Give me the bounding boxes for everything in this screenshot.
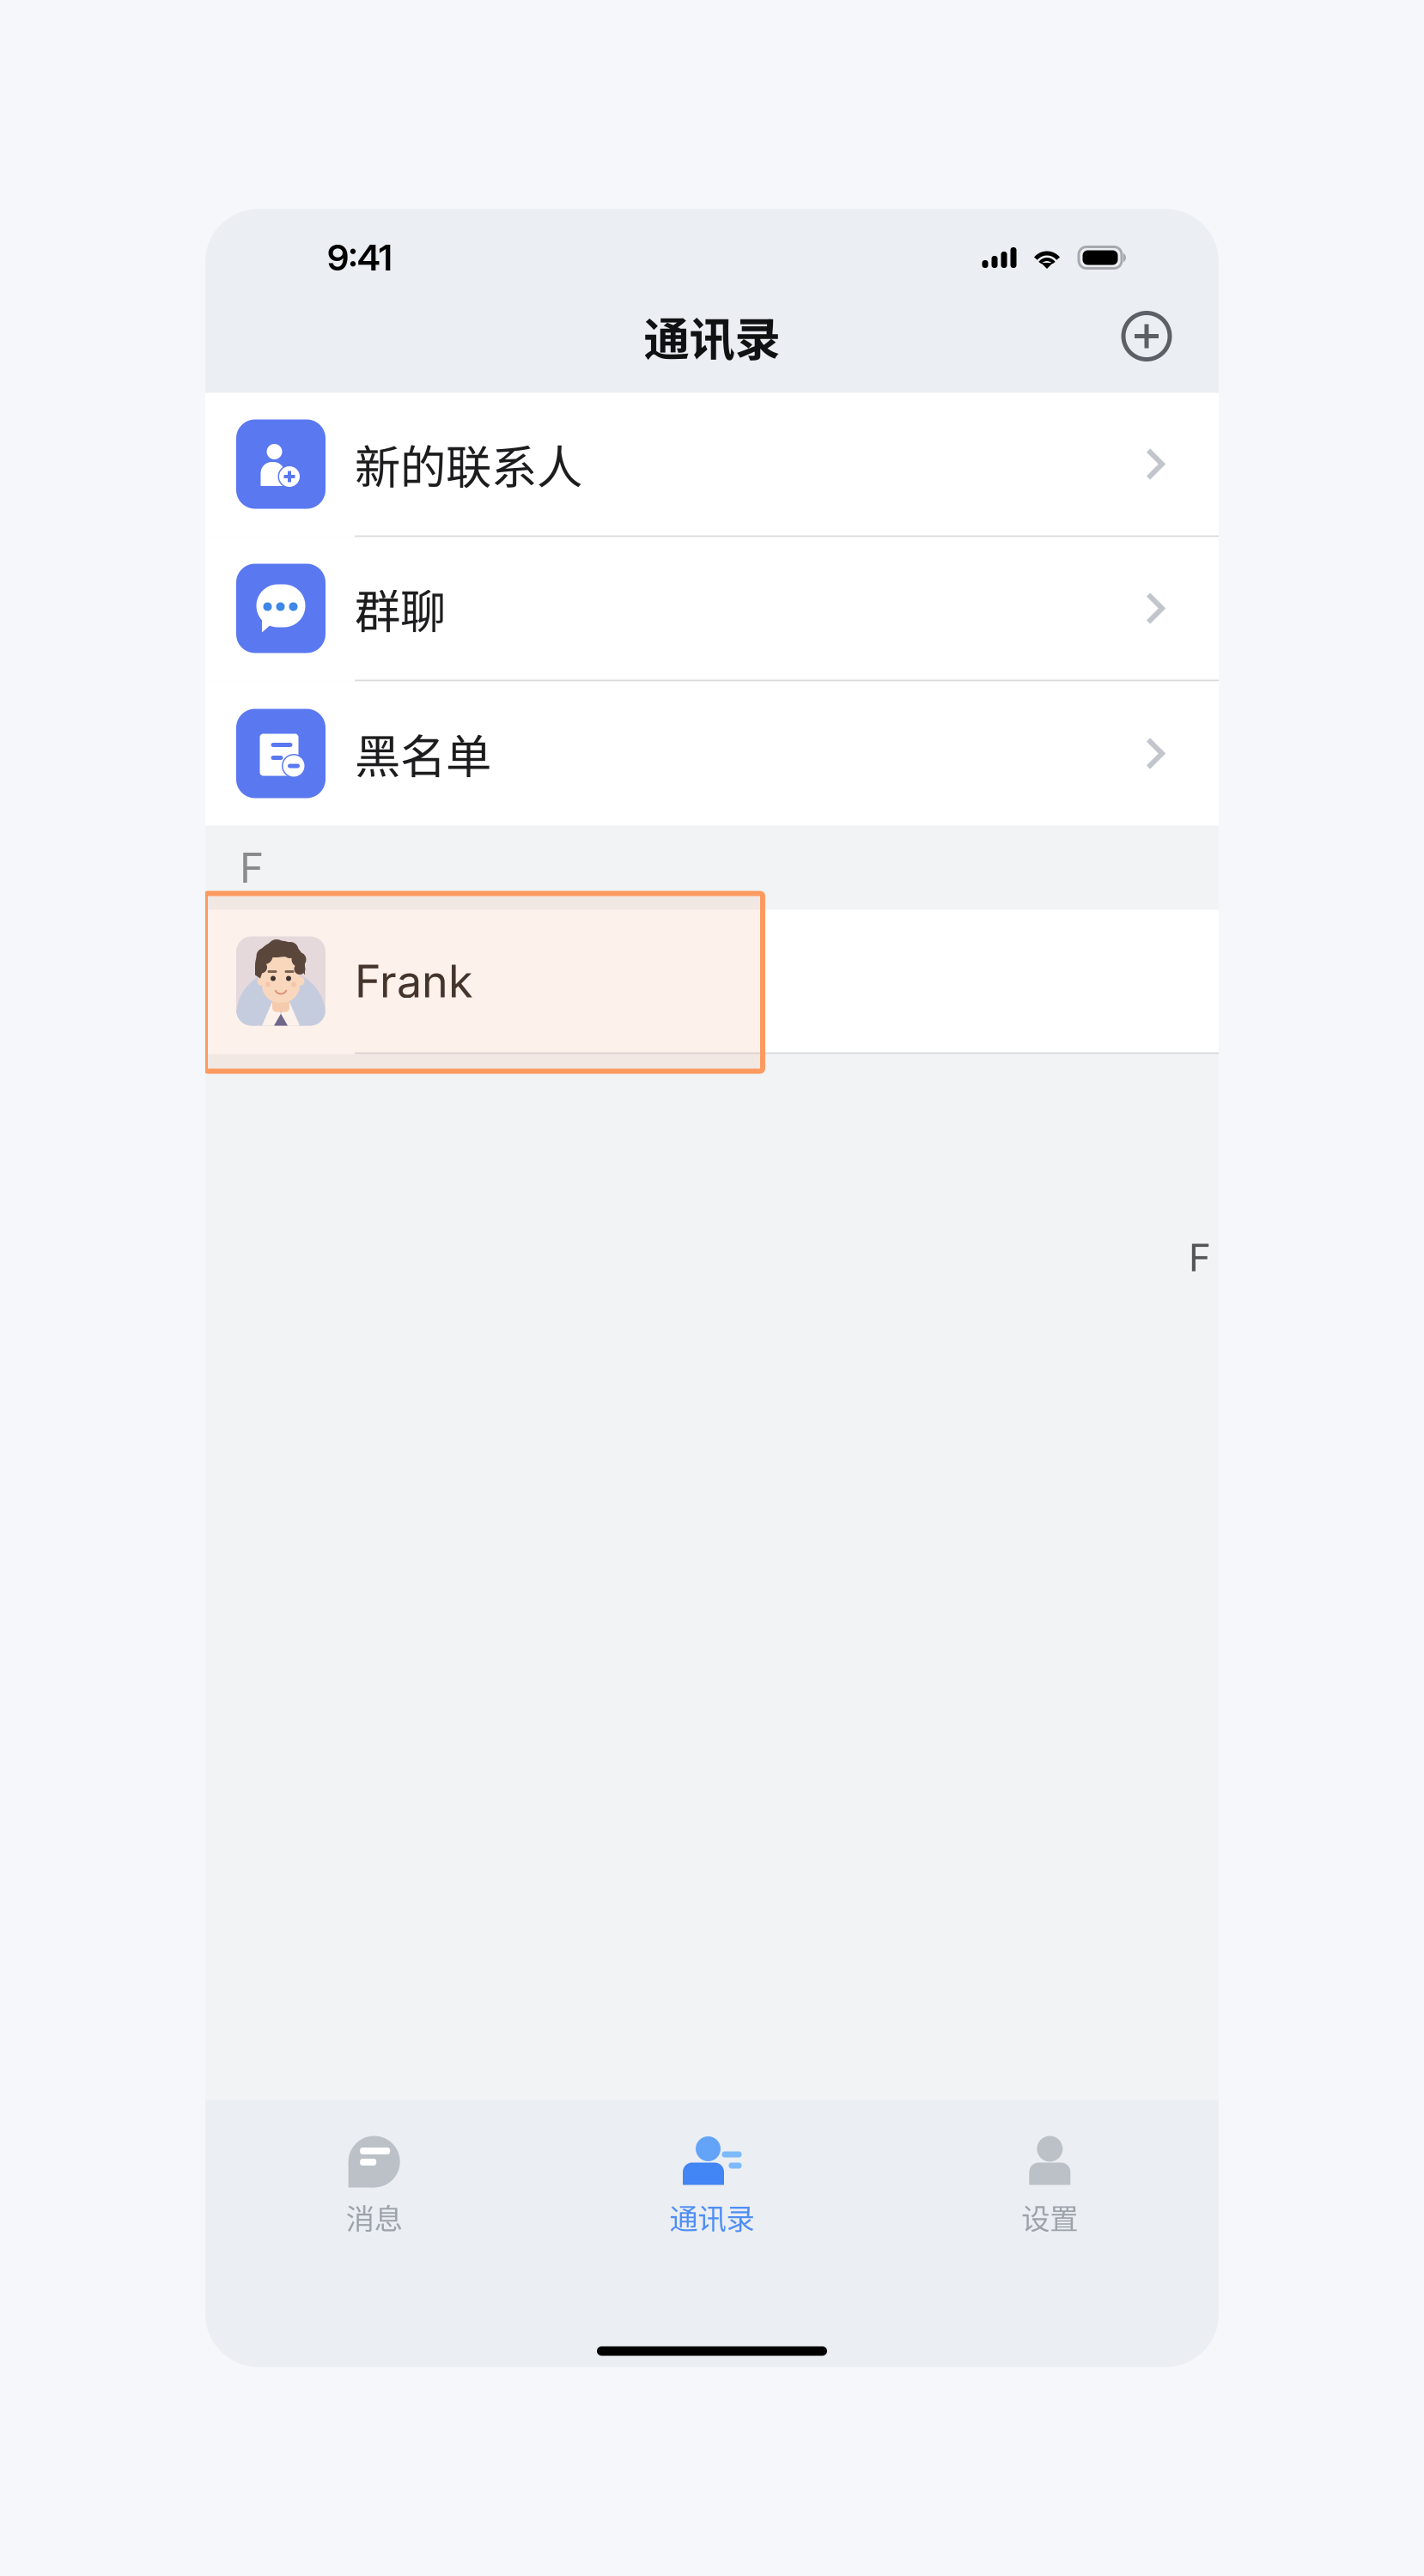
- staticText: 通讯录: [669, 2196, 755, 2238]
- staticText: 黑名单: [355, 720, 491, 787]
- staticText: 群聊: [355, 575, 446, 642]
- staticText: F: [1189, 1235, 1211, 1280]
- button[interactable]: 设置: [881, 2136, 1219, 2273]
- staticText: Frank: [355, 954, 473, 1008]
- button[interactable]: 新的联系人: [205, 393, 1219, 537]
- staticText: 消息: [346, 2196, 403, 2238]
- staticText: 通讯录: [644, 303, 780, 369]
- button[interactable]: 黑名单: [205, 681, 1219, 826]
- button[interactable]: 通讯录: [543, 2136, 881, 2273]
- button[interactable]: 消息: [205, 2136, 543, 2273]
- button[interactable]: 群聊: [205, 537, 1219, 681]
- button[interactable]: Add contact: [1123, 313, 1170, 359]
- staticText: 新的联系人: [355, 431, 582, 497]
- staticText: 设置: [1021, 2196, 1078, 2238]
- button[interactable]: Frank: [205, 910, 1219, 1054]
- staticText: F: [240, 843, 264, 893]
- staticText: 9:41: [327, 236, 393, 279]
